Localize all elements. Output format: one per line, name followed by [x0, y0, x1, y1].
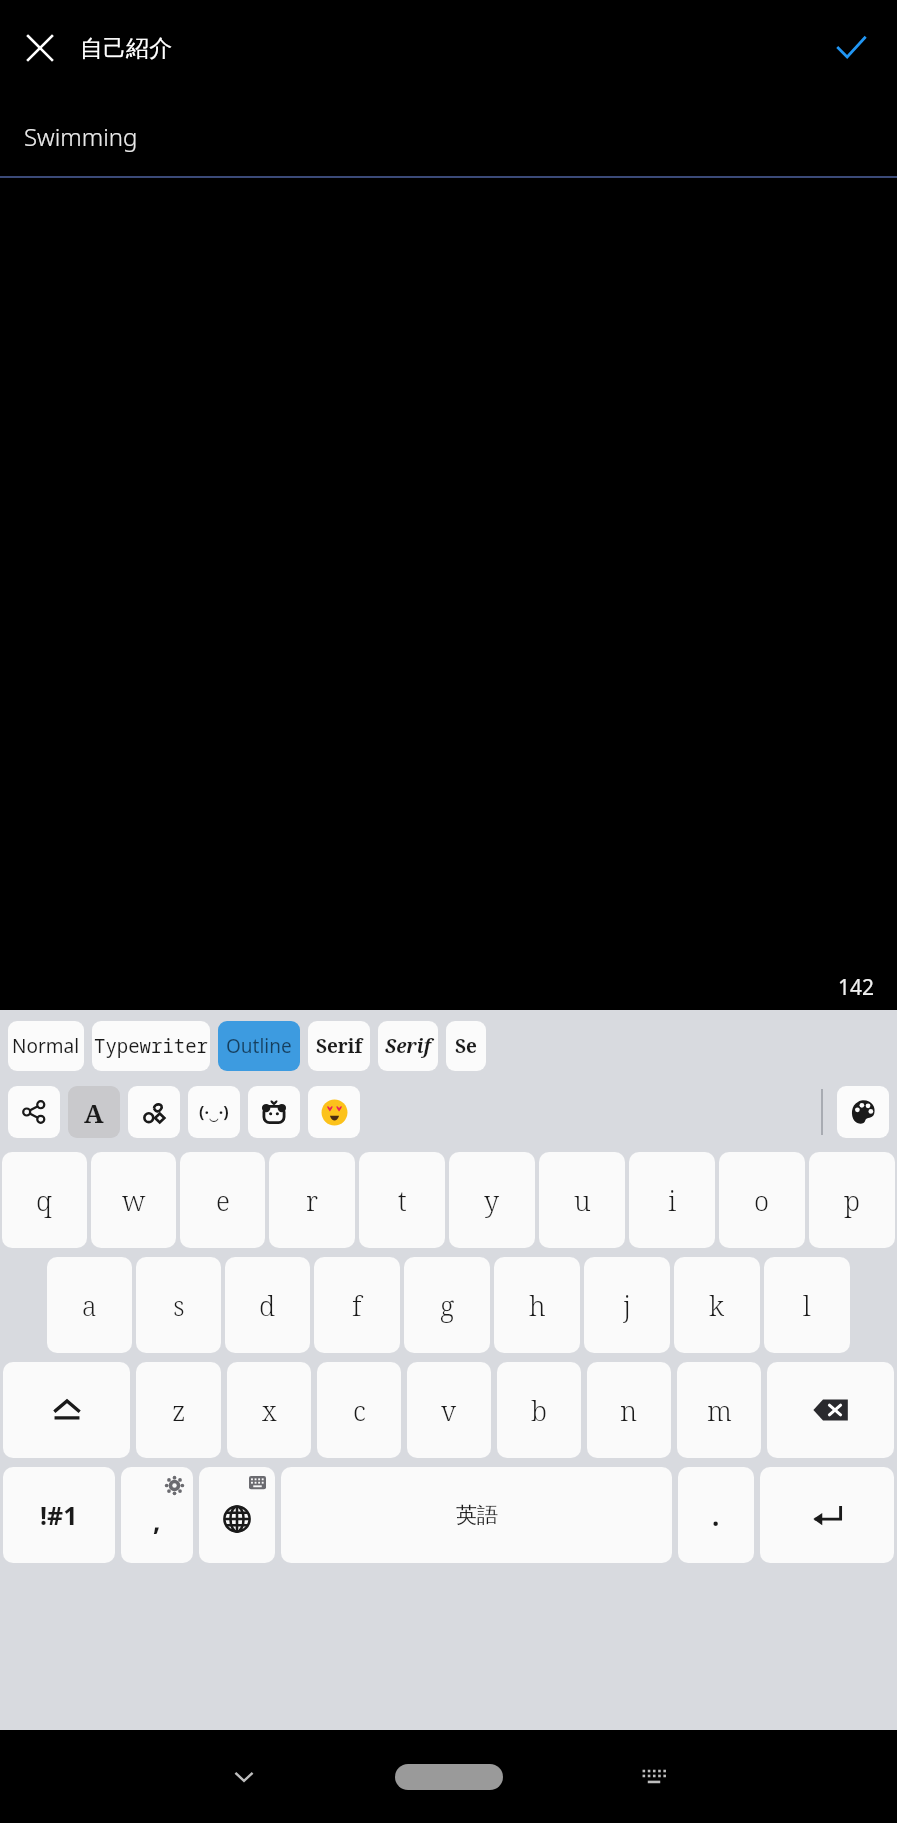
button[interactable]: Kaomoji — [188, 1086, 240, 1138]
staticText: Outline — [226, 1033, 292, 1059]
button[interactable]: Se — [446, 1021, 486, 1071]
button[interactable]: j — [584, 1257, 670, 1353]
staticText: s — [173, 1287, 185, 1324]
button[interactable]: n — [587, 1362, 671, 1458]
staticText: n — [620, 1392, 638, 1429]
button[interactable]: i — [629, 1152, 715, 1248]
staticText: b — [531, 1392, 548, 1429]
button[interactable]: l — [764, 1257, 850, 1353]
staticText: a — [82, 1287, 97, 1324]
staticText: 142 — [838, 973, 875, 1002]
button[interactable]: Enter — [760, 1467, 894, 1563]
staticText: A — [84, 1095, 104, 1130]
button[interactable]: c — [317, 1362, 401, 1458]
staticText: h — [529, 1287, 546, 1324]
button[interactable]: k — [674, 1257, 760, 1353]
button[interactable]: Serif — [378, 1021, 438, 1071]
staticText: z — [172, 1392, 186, 1429]
button[interactable]: Stickers — [248, 1086, 300, 1138]
staticText: Serif — [316, 1033, 363, 1059]
button[interactable]: d — [225, 1257, 310, 1353]
button[interactable]: Serif — [308, 1021, 370, 1071]
button[interactable]: r — [269, 1152, 355, 1248]
button[interactable]: x — [227, 1362, 311, 1458]
button[interactable]: Change keyboard language — [199, 1467, 275, 1563]
button[interactable]: s — [136, 1257, 221, 1353]
button[interactable]: w — [91, 1152, 176, 1248]
staticText: g — [440, 1287, 455, 1324]
staticText: x — [262, 1392, 277, 1429]
button[interactable]: Share — [8, 1086, 60, 1138]
button[interactable]: 英語 — [281, 1467, 672, 1563]
staticText: , — [153, 1503, 161, 1538]
button[interactable]: Confirm — [819, 16, 883, 80]
button[interactable]: m — [677, 1362, 761, 1458]
button[interactable]: Outline — [218, 1021, 300, 1071]
staticText: u — [574, 1182, 591, 1219]
staticText: Normal — [12, 1033, 80, 1059]
button[interactable]: Close — [8, 16, 72, 80]
staticText: 英語 — [456, 1502, 498, 1528]
staticText: w — [122, 1182, 146, 1219]
staticText: !#1 — [40, 1498, 78, 1532]
staticText: m — [707, 1392, 732, 1429]
button[interactable]: b — [497, 1362, 581, 1458]
button[interactable]: Normal — [8, 1021, 84, 1071]
staticText: i — [668, 1182, 677, 1219]
staticText: j — [623, 1287, 631, 1324]
button[interactable]: . — [678, 1467, 754, 1563]
button[interactable]: Color palette — [837, 1086, 889, 1138]
staticText: q — [36, 1182, 53, 1219]
button[interactable]: q — [2, 1152, 87, 1248]
staticText: p — [844, 1182, 861, 1219]
button[interactable]: Switch keyboard — [626, 1749, 682, 1805]
button[interactable]: h — [494, 1257, 580, 1353]
button[interactable]: e — [180, 1152, 265, 1248]
staticText: Swimming — [24, 120, 138, 153]
button[interactable]: o — [719, 1152, 805, 1248]
staticText: Se — [455, 1033, 477, 1059]
button[interactable]: z — [136, 1362, 221, 1458]
staticText: e — [216, 1182, 230, 1219]
button[interactable]: p — [809, 1152, 895, 1248]
button[interactable]: u — [539, 1152, 625, 1248]
button[interactable]: Shapes — [128, 1086, 180, 1138]
button[interactable]: Home — [395, 1764, 503, 1790]
button[interactable]: Hide keyboard — [216, 1749, 272, 1805]
button[interactable]: g — [404, 1257, 490, 1353]
staticText: r — [306, 1182, 318, 1219]
button[interactable]: f — [314, 1257, 400, 1353]
staticText: (·‿·) — [199, 1101, 229, 1123]
staticText: d — [259, 1287, 276, 1324]
button[interactable]: Comma and settings — [121, 1467, 193, 1563]
staticText: Serif — [385, 1033, 432, 1059]
button[interactable]: a — [47, 1257, 132, 1353]
staticText: y — [484, 1182, 500, 1219]
button[interactable]: Font styles — [68, 1086, 120, 1138]
staticText: Typewriter — [94, 1033, 209, 1059]
button[interactable]: t — [359, 1152, 445, 1248]
button[interactable]: Typewriter — [92, 1021, 210, 1071]
staticText: k — [709, 1287, 725, 1324]
button[interactable]: v — [407, 1362, 491, 1458]
staticText: v — [441, 1392, 457, 1429]
staticText: . — [712, 1498, 720, 1533]
button[interactable]: Backspace — [767, 1362, 894, 1458]
button[interactable]: !#1 — [3, 1467, 115, 1563]
button[interactable]: Emoji — [308, 1086, 360, 1138]
staticText: f — [352, 1287, 362, 1324]
staticText: t — [398, 1182, 407, 1219]
staticText: l — [803, 1287, 811, 1324]
staticText: o — [754, 1182, 770, 1219]
button[interactable]: y — [449, 1152, 535, 1248]
staticText: c — [353, 1392, 366, 1429]
staticText: 自己紹介 — [80, 34, 172, 63]
button[interactable]: Shift — [3, 1362, 130, 1458]
